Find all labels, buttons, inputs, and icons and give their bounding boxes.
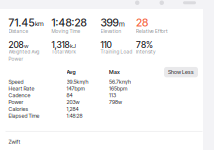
staticText: kJ (70, 42, 76, 49)
staticText: m (119, 20, 125, 28)
staticText: Elevation (100, 28, 121, 34)
staticText: Relative Effort (136, 28, 168, 34)
staticText: 798w (109, 99, 122, 105)
staticText: Moving Time (51, 28, 80, 34)
staticText: 1:48:28 (66, 112, 82, 119)
staticText: 203w (66, 99, 79, 105)
staticText: Intensity (136, 49, 156, 55)
staticText: Elapsed Time (8, 112, 39, 119)
staticText: 1,318 (51, 39, 69, 50)
staticText: 110 (100, 39, 111, 50)
staticText: Training Load (100, 49, 132, 55)
staticText: Total Work (51, 49, 75, 55)
staticText: 78% (136, 39, 153, 50)
staticText: Avg (66, 69, 75, 75)
staticText: 147bpm (66, 85, 84, 92)
staticText: Heart Rate (8, 85, 34, 92)
staticText: Power (8, 99, 23, 105)
staticText: Calories (8, 106, 28, 112)
staticText: Distance (8, 28, 28, 34)
staticText: Power (8, 56, 23, 62)
staticText: Weighted Avg (8, 49, 39, 55)
staticText: 399 (100, 16, 118, 29)
staticText: 113 (109, 92, 116, 99)
staticText: 1:48:28 (51, 16, 86, 29)
staticText: 71.45 (8, 16, 34, 29)
staticText: 165bpm (109, 85, 127, 92)
staticText: 39.5km/h (66, 78, 88, 85)
staticText: 28 (136, 16, 148, 29)
staticText: 1,284 (66, 106, 78, 112)
staticText: 84 (66, 92, 72, 99)
staticText: 208 (8, 39, 23, 50)
button[interactable]: Share (183, 1, 196, 4)
staticText: km (35, 20, 44, 28)
staticText: Cadence (8, 92, 30, 99)
button[interactable]: Comment (159, 0, 164, 5)
button[interactable]: Kudos (135, 0, 139, 5)
staticText: w (24, 42, 28, 49)
staticText: Max (109, 69, 120, 75)
staticText: 56.7km/h (109, 78, 131, 85)
staticText: Zwift (8, 138, 20, 145)
staticText: Show Less (168, 69, 194, 75)
staticText: Speed (8, 78, 23, 85)
button[interactable]: Show Less (164, 67, 198, 77)
